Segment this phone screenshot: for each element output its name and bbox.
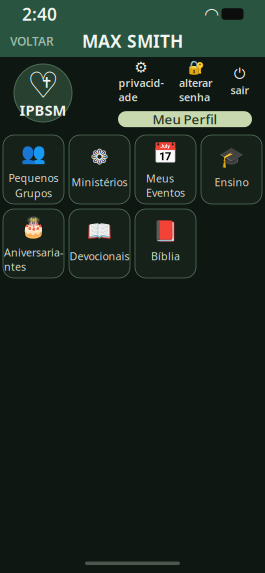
button[interactable]: 📖 <box>69 209 130 278</box>
staticText: Grupos <box>15 186 52 200</box>
staticText: 📖 <box>87 220 112 242</box>
staticText: ♡ <box>27 65 59 106</box>
button[interactable]: VOLTAR <box>0 27 64 55</box>
button[interactable]: Meu Perfil <box>118 111 252 127</box>
staticText: 🔐 <box>187 60 204 75</box>
staticText: Ensino <box>214 175 248 189</box>
staticText: ❁ <box>90 145 108 169</box>
staticText: Aniversariantes <box>4 245 63 274</box>
staticText: Pequenos <box>8 171 58 185</box>
staticText: 📕 <box>153 220 178 242</box>
staticText: ◠ <box>205 4 218 24</box>
staticText: VOLTAR <box>10 33 54 49</box>
staticText: 📅 <box>153 142 178 165</box>
staticText: 🎂 <box>21 216 46 239</box>
button[interactable]: 🔐 <box>176 59 216 106</box>
staticText: alterar senha <box>179 76 213 104</box>
staticText: Meu Perfil <box>152 110 217 128</box>
staticText: ⚙ <box>134 59 147 76</box>
button[interactable]: ⚙ <box>115 59 166 106</box>
button[interactable]: ❁ <box>69 135 130 204</box>
staticText: MAX SMITH <box>82 29 183 52</box>
staticText: Ministérios <box>71 175 127 189</box>
button[interactable]: 📅 <box>135 135 196 204</box>
staticText: sair <box>230 83 249 97</box>
staticText: 👥 <box>21 141 46 164</box>
staticText: privacidade <box>118 76 163 104</box>
staticText: 🎓 <box>219 146 244 168</box>
staticText: 2:40 <box>22 2 57 25</box>
button[interactable]: 📕 <box>135 209 196 278</box>
staticText: ⏻ <box>234 67 246 82</box>
staticText: ✝ <box>40 74 52 91</box>
button[interactable]: ⏻ <box>227 66 252 99</box>
staticText: Meus Eventos <box>146 171 185 200</box>
staticText: IPBSM <box>19 100 66 120</box>
staticText: Devocionais <box>69 249 129 263</box>
staticText: Bíblia <box>151 249 180 263</box>
button[interactable]: 👥 <box>3 135 64 204</box>
button[interactable]: 🎓 <box>201 135 262 204</box>
button[interactable]: 🎂 <box>3 209 64 278</box>
